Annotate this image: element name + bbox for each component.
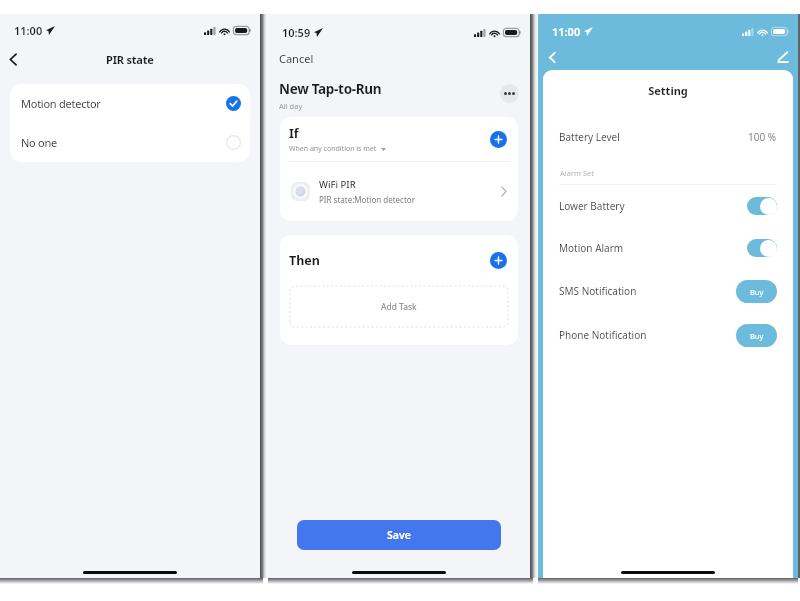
staticText: Add Task	[381, 301, 417, 313]
staticText: 10:59	[282, 25, 311, 40]
staticText: 11:00	[552, 24, 581, 39]
button[interactable]: Motion Alarm	[543, 227, 793, 269]
button[interactable]: Battery Level	[543, 115, 793, 158]
button[interactable]: WiFi PIR	[280, 162, 518, 221]
button[interactable]: Lower Battery	[543, 185, 793, 227]
button[interactable]: Phone Notification	[543, 313, 793, 357]
button[interactable]: Add	[490, 131, 507, 148]
staticText: Buy	[750, 331, 764, 341]
staticText: Battery Level	[559, 130, 620, 144]
staticText: Then	[289, 252, 320, 269]
button[interactable]: More options	[500, 84, 519, 103]
staticText: Motion Alarm	[559, 241, 624, 255]
button[interactable]: Motion detector	[10, 84, 250, 123]
staticText: Phone Notification	[559, 328, 647, 342]
staticText: SMS Notification	[559, 284, 637, 298]
staticText: Save	[387, 528, 411, 542]
staticText: If	[289, 125, 299, 142]
button[interactable]: Back	[1, 47, 25, 71]
button[interactable]: No one	[10, 123, 250, 162]
staticText: No one	[21, 135, 58, 150]
button[interactable]: Cancel	[279, 51, 314, 66]
button[interactable]: Buy	[736, 324, 777, 347]
button[interactable]: Toggle	[747, 197, 777, 215]
staticText: All day	[279, 101, 303, 111]
staticText: WiFi PIR	[319, 178, 356, 191]
staticText: Setting	[543, 83, 793, 98]
staticText: Motion detector	[21, 96, 101, 111]
staticText: 11:00	[14, 23, 43, 38]
button[interactable]: Add Task	[290, 286, 508, 327]
button[interactable]: Save	[297, 520, 501, 550]
button[interactable]: Toggle	[747, 239, 777, 257]
staticText: When any condition is met	[289, 144, 377, 154]
staticText: 100 %	[748, 130, 777, 144]
staticText: Lower Battery	[559, 199, 625, 213]
button[interactable]: Back	[541, 46, 563, 68]
staticText: PIR state	[106, 52, 154, 67]
staticText: New Tap-to-Run	[279, 80, 382, 98]
button[interactable]: Buy	[736, 280, 777, 303]
button[interactable]: SMS Notification	[543, 269, 793, 313]
staticText: PIR state:Motion detector	[319, 194, 415, 205]
staticText: Alarm Set	[560, 168, 595, 178]
staticText: Buy	[750, 287, 764, 297]
button[interactable]: Edit	[774, 48, 792, 66]
button[interactable]: Add	[490, 252, 507, 269]
